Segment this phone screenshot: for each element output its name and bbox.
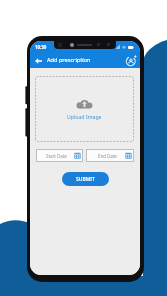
staticText: Upload Image xyxy=(67,113,102,120)
button[interactable]: Start Date xyxy=(36,149,83,162)
staticText: SUBMIT xyxy=(76,176,95,183)
staticText: Start Date xyxy=(46,153,67,159)
button[interactable]: Back xyxy=(34,56,43,65)
button[interactable]: Upload Image xyxy=(35,76,134,142)
button[interactable]: Add patient xyxy=(125,54,137,66)
staticText: Add prescription xyxy=(47,56,91,64)
staticText: End Date xyxy=(98,153,117,159)
button[interactable]: SUBMIT xyxy=(62,172,109,186)
button[interactable]: End Date xyxy=(86,149,134,162)
staticText: 10:30 xyxy=(35,44,47,50)
